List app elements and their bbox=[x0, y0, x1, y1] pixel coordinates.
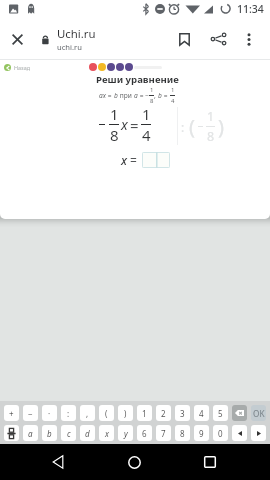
staticText: 9 bbox=[199, 428, 204, 439]
staticText: ax bbox=[99, 91, 106, 100]
staticText: d bbox=[85, 428, 90, 439]
staticText: + bbox=[9, 408, 14, 419]
button[interactable]: · bbox=[42, 405, 57, 421]
staticText: ) bbox=[218, 113, 224, 140]
button[interactable]: Close bbox=[2, 18, 33, 60]
staticText: ( bbox=[105, 408, 108, 419]
button[interactable]: 0 bbox=[213, 425, 228, 441]
staticText: 11:34 bbox=[237, 2, 264, 16]
staticText: 4 bbox=[171, 97, 175, 105]
button[interactable]: d bbox=[80, 425, 95, 441]
button[interactable]: Share bbox=[204, 18, 233, 60]
button[interactable]: Recent apps bbox=[193, 445, 227, 479]
staticText: b bbox=[47, 428, 52, 439]
staticText: uchi.ru bbox=[57, 42, 82, 52]
staticText: 8 bbox=[150, 97, 154, 105]
button[interactable]: Bookmark bbox=[170, 18, 198, 60]
staticText: = bbox=[106, 91, 114, 100]
button[interactable]: OK bbox=[251, 405, 266, 421]
button[interactable]: + bbox=[4, 405, 19, 421]
button[interactable]: 4 bbox=[194, 405, 209, 421]
staticText: ) bbox=[124, 408, 127, 419]
button[interactable]: b bbox=[42, 425, 57, 441]
staticText: = bbox=[130, 115, 139, 135]
staticText: 2 bbox=[161, 408, 166, 419]
staticText: y bbox=[124, 428, 128, 439]
staticText: 1 bbox=[110, 104, 119, 124]
staticText: x bbox=[121, 152, 127, 168]
staticText: , bbox=[86, 408, 89, 419]
staticText: 8 bbox=[110, 125, 119, 145]
staticText: 4 bbox=[142, 125, 151, 145]
staticText: : bbox=[181, 119, 185, 135]
staticText: 1 bbox=[207, 108, 215, 125]
button[interactable]: 5 bbox=[213, 405, 228, 421]
staticText: a bbox=[28, 428, 33, 439]
button[interactable]: 7 bbox=[156, 425, 171, 441]
staticText: 8 bbox=[207, 128, 215, 145]
staticText: 1 bbox=[142, 104, 151, 124]
button[interactable]: Answer input bbox=[142, 152, 170, 168]
staticText: 7 bbox=[161, 428, 166, 439]
button[interactable]: 9 bbox=[194, 425, 209, 441]
button[interactable]: − bbox=[23, 405, 38, 421]
button[interactable]: Fraction bbox=[4, 425, 19, 441]
staticText: · bbox=[48, 408, 51, 419]
staticText: Реши уравнение bbox=[96, 73, 179, 86]
staticText: 8 bbox=[180, 428, 185, 439]
staticText: = bbox=[130, 152, 137, 168]
staticText: c bbox=[67, 428, 71, 439]
button[interactable]: Back bbox=[41, 445, 75, 479]
button[interactable]: More options bbox=[236, 18, 262, 60]
button[interactable]: 6 bbox=[137, 425, 152, 441]
button[interactable]: x bbox=[99, 425, 114, 441]
button[interactable]: , bbox=[80, 405, 95, 421]
staticText: b bbox=[158, 91, 162, 100]
staticText: = bbox=[162, 91, 170, 100]
button[interactable]: 8 bbox=[175, 425, 190, 441]
staticText: : bbox=[67, 408, 70, 419]
button[interactable]: : bbox=[61, 405, 76, 421]
staticText: ( bbox=[189, 113, 195, 140]
staticText: x bbox=[105, 428, 109, 439]
button[interactable]: 3 bbox=[175, 405, 190, 421]
button[interactable]: Cursor right bbox=[251, 425, 266, 441]
button[interactable]: y bbox=[118, 425, 133, 441]
button[interactable]: ) bbox=[118, 405, 133, 421]
button[interactable]: ( bbox=[99, 405, 114, 421]
staticText: 1 bbox=[142, 408, 147, 419]
staticText: 1 bbox=[150, 86, 154, 94]
staticText: 3 bbox=[180, 408, 185, 419]
button[interactable]: Backspace bbox=[232, 405, 247, 421]
staticText: 1 bbox=[171, 86, 175, 94]
button[interactable]: Home bbox=[117, 445, 151, 479]
button[interactable]: Cursor left bbox=[232, 425, 247, 441]
button[interactable]: Назад bbox=[4, 64, 30, 71]
staticText: 5 bbox=[218, 408, 223, 419]
staticText: a bbox=[134, 91, 138, 100]
staticText: = − bbox=[138, 91, 149, 100]
button[interactable]: c bbox=[61, 425, 76, 441]
button[interactable]: 1 bbox=[137, 405, 152, 421]
staticText: OK bbox=[253, 408, 265, 419]
staticText: Uchi.ru bbox=[57, 26, 96, 42]
staticText: 0 bbox=[218, 428, 223, 439]
staticText: при bbox=[118, 91, 134, 100]
staticText: 4 bbox=[199, 408, 204, 419]
staticText: − bbox=[28, 408, 33, 419]
staticText: b bbox=[114, 91, 118, 100]
button[interactable]: a bbox=[23, 425, 38, 441]
staticText: , bbox=[154, 91, 158, 100]
staticText: x bbox=[121, 115, 128, 134]
staticText: Назад bbox=[14, 64, 30, 71]
staticText: 6 bbox=[142, 428, 147, 439]
button[interactable]: 2 bbox=[156, 405, 171, 421]
